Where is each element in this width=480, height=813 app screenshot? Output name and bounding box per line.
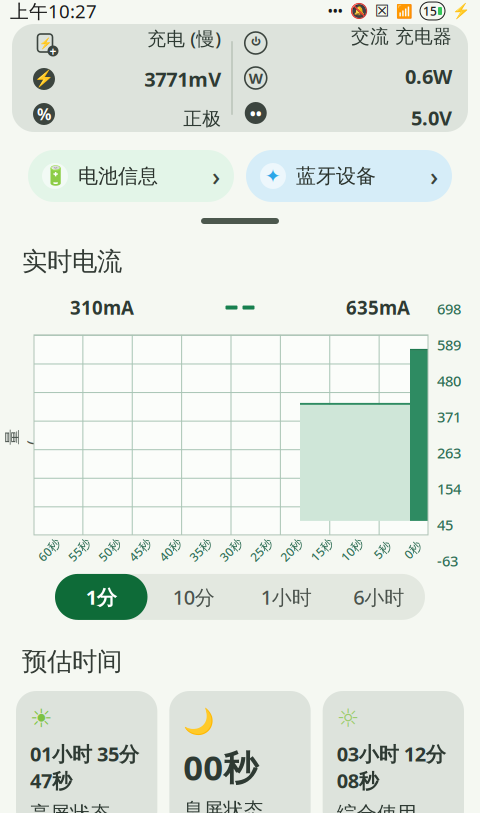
staticText: 154 bbox=[437, 479, 461, 499]
staticText: 1分 bbox=[86, 584, 117, 610]
staticText: ⚡ bbox=[38, 37, 51, 49]
button[interactable]: 🌙 bbox=[169, 691, 311, 813]
staticText: 亮屏状态 bbox=[30, 802, 110, 813]
staticText: 635mA bbox=[346, 295, 410, 320]
staticText: 45秒 bbox=[127, 542, 153, 558]
staticText: 🔕 bbox=[350, 3, 368, 19]
staticText: 310mA bbox=[70, 295, 134, 320]
staticText: ☼ bbox=[337, 704, 360, 733]
button[interactable]: ✦ bbox=[246, 150, 452, 202]
staticText: 5秒 bbox=[373, 542, 392, 558]
staticText: 00秒 bbox=[183, 744, 258, 790]
staticText: 0.6W bbox=[405, 63, 452, 89]
staticText: 30秒 bbox=[218, 542, 244, 558]
staticText: 6小时 bbox=[353, 584, 404, 610]
staticText: 1小时 bbox=[261, 584, 312, 610]
button[interactable]: ☀ bbox=[16, 691, 157, 813]
button[interactable]: 6小时 bbox=[332, 574, 425, 620]
staticText: 电池信息 bbox=[78, 164, 158, 188]
staticText: 50秒 bbox=[97, 542, 123, 558]
staticText: ✦ bbox=[265, 165, 281, 187]
staticText: 60秒 bbox=[36, 542, 62, 558]
staticText: 20秒 bbox=[279, 542, 305, 558]
staticText: 预估时间 bbox=[22, 646, 122, 677]
staticText: 10秒 bbox=[339, 542, 365, 558]
staticText: 蓝牙设备 bbox=[296, 164, 376, 188]
staticText: 充电 (慢) bbox=[147, 26, 221, 51]
button[interactable]: ☼ bbox=[323, 691, 464, 813]
staticText: 10分 bbox=[173, 584, 215, 610]
staticText: 使用量 (mA) bbox=[14, 373, 34, 497]
staticText: 综合使用 bbox=[337, 802, 417, 813]
staticText: 🌙 bbox=[183, 707, 215, 736]
staticText: › bbox=[430, 159, 438, 193]
staticText: % bbox=[37, 103, 51, 125]
button[interactable]: 10分 bbox=[147, 574, 240, 620]
staticText: ⚡ bbox=[452, 3, 470, 19]
button[interactable]: 🔋 bbox=[28, 150, 234, 202]
staticText: 371 bbox=[437, 407, 461, 427]
staticText: + bbox=[49, 43, 56, 59]
staticText: 交流 充电器 bbox=[351, 25, 452, 48]
staticText: 03小时 12分 08秒 bbox=[337, 741, 446, 794]
staticText: 263 bbox=[437, 443, 461, 463]
staticText: 01小时 35分 47秒 bbox=[30, 741, 139, 794]
staticText: 3771mV bbox=[144, 66, 221, 92]
staticText: 5.0V bbox=[411, 104, 452, 131]
staticText: 实时电流 bbox=[22, 246, 122, 277]
staticText: W bbox=[249, 68, 263, 88]
staticText: ⚡ bbox=[34, 70, 54, 88]
staticText: ••• bbox=[328, 3, 343, 19]
staticText: 0秒 bbox=[403, 542, 422, 558]
staticText: 🔋 bbox=[43, 165, 66, 187]
button[interactable]: 1分 bbox=[55, 574, 147, 620]
staticText: 45 bbox=[437, 515, 453, 535]
staticText: 上午10:27 bbox=[10, 0, 97, 23]
button[interactable]: 1小时 bbox=[240, 574, 332, 620]
staticText: 589 bbox=[437, 335, 461, 355]
staticText: 55秒 bbox=[66, 542, 92, 558]
staticText: ☒ bbox=[375, 2, 389, 20]
staticText: 480 bbox=[437, 371, 461, 391]
staticText: 25秒 bbox=[248, 542, 274, 558]
staticText: 40秒 bbox=[157, 542, 183, 558]
staticText: ⏻ bbox=[251, 34, 260, 52]
staticText: -63 bbox=[437, 551, 458, 571]
staticText: ☀ bbox=[30, 704, 53, 733]
staticText: 15 bbox=[423, 3, 437, 19]
staticText: 📶 bbox=[396, 3, 413, 19]
staticText: 35秒 bbox=[188, 542, 214, 558]
staticText: •• bbox=[250, 102, 262, 124]
staticText: › bbox=[212, 159, 220, 193]
staticText: 息屏状态 bbox=[183, 798, 263, 813]
staticText: 698 bbox=[437, 299, 461, 319]
staticText: 正极 bbox=[183, 107, 221, 130]
staticText: 15秒 bbox=[309, 542, 335, 558]
